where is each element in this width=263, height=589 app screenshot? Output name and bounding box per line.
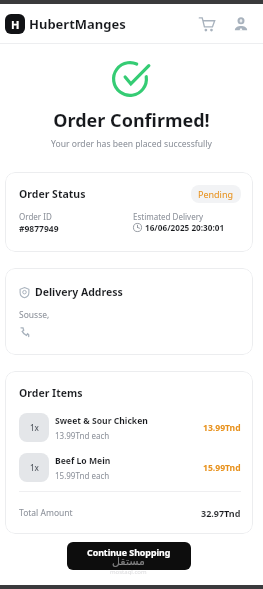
staticText: Order Confirmed!	[53, 108, 210, 133]
staticText: 1x	[30, 462, 39, 473]
staticText: Beef Lo Mein	[55, 455, 111, 467]
staticText: 13.99Tnd	[203, 422, 241, 434]
staticText: 15.99Tnd	[203, 462, 241, 474]
staticText: 32.97Tnd	[201, 507, 241, 519]
staticText: 1x	[30, 422, 39, 433]
staticText: 13.99Tnd each	[55, 430, 110, 441]
staticText: Total Amount	[19, 507, 73, 519]
staticText: H	[11, 17, 20, 32]
staticText: مستقل	[112, 555, 145, 568]
staticText: Estimated Delivery	[133, 211, 204, 222]
staticText: Delivery Address	[35, 285, 123, 299]
staticText: 15.99Tnd each	[55, 470, 110, 481]
staticText: Pending	[198, 188, 234, 200]
button[interactable]: Account	[229, 12, 253, 36]
button[interactable]: Pending	[191, 185, 241, 203]
button[interactable]: H	[5, 14, 126, 34]
staticText: Order Items	[19, 386, 83, 400]
staticText: Your order has been placed successfully	[51, 138, 212, 150]
staticText: Order Status	[19, 187, 86, 201]
button[interactable]: 1x	[19, 413, 241, 442]
staticText: HubertManges	[29, 15, 126, 33]
staticText: 16/06/2025 20:30:01	[145, 222, 225, 233]
staticText: Order ID	[19, 211, 52, 222]
button[interactable]: 1x	[19, 453, 241, 482]
staticText: #9877949	[19, 223, 59, 235]
staticText: Sousse,	[19, 309, 50, 321]
button[interactable]: Cart	[195, 12, 219, 36]
staticText: Sweet & Sour Chicken	[55, 415, 148, 427]
staticText: Continue Shopping	[87, 547, 171, 559]
staticText: mostaql.com	[110, 568, 147, 576]
button[interactable]: Continue Shopping	[67, 542, 191, 570]
